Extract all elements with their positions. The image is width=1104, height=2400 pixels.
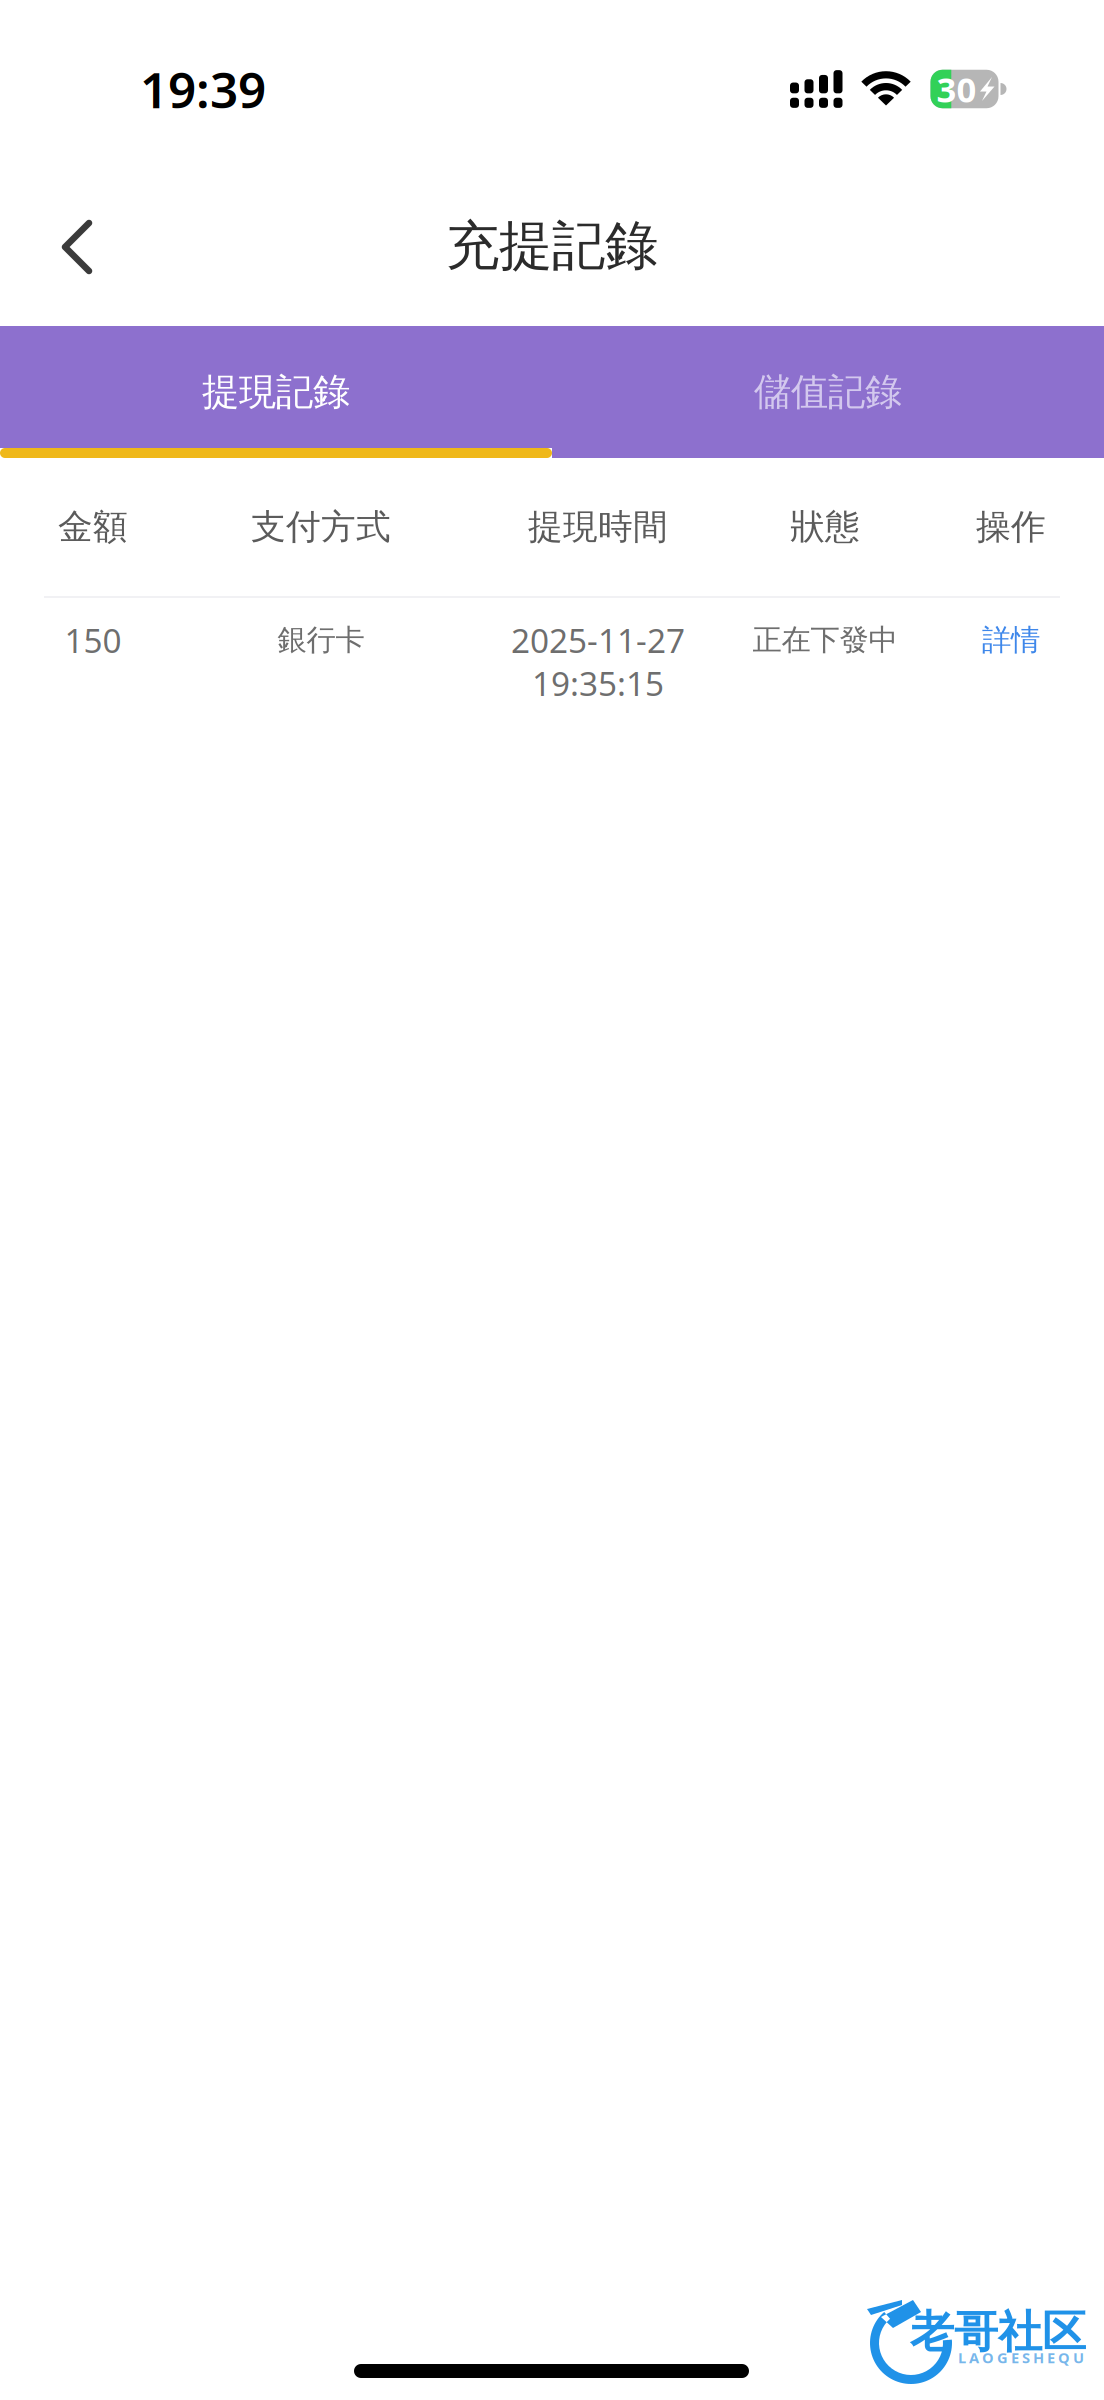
button[interactable]: Back bbox=[21, 197, 131, 307]
staticText: 19:35:15 bbox=[532, 661, 664, 705]
staticText: 支付方式 bbox=[251, 506, 391, 548]
staticText: 充提記錄 bbox=[446, 213, 658, 279]
staticText: 金額 bbox=[58, 506, 128, 548]
staticText: 老哥社区 bbox=[910, 2305, 1086, 2359]
staticText: 提現時間 bbox=[528, 506, 668, 548]
staticText: 儲值記錄 bbox=[754, 369, 902, 415]
staticText: 銀行卡 bbox=[277, 622, 364, 658]
staticText: 操作 bbox=[976, 506, 1046, 548]
staticText: 2025-11-27 bbox=[511, 618, 685, 662]
staticText: LAOGESHEQU bbox=[958, 2348, 1084, 2367]
staticText: 提現記錄 bbox=[202, 369, 350, 415]
staticText: 正在下發中 bbox=[752, 622, 897, 658]
staticText: 30 bbox=[936, 66, 976, 112]
button[interactable]: 儲值記錄 bbox=[552, 326, 1104, 448]
staticText: 狀態 bbox=[790, 506, 860, 548]
staticText: 19:39 bbox=[140, 56, 266, 122]
button[interactable]: 詳情 bbox=[910, 625, 1104, 655]
button[interactable]: 提現記錄 bbox=[0, 326, 552, 448]
staticText: 詳情 bbox=[982, 622, 1040, 658]
staticText: 150 bbox=[64, 618, 121, 662]
